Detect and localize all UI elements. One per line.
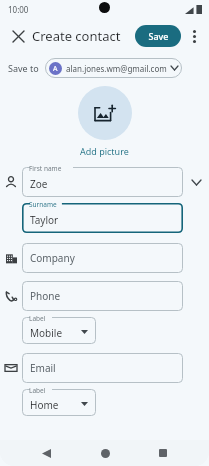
button[interactable]: A [45, 58, 182, 78]
staticText: Save to [8, 62, 39, 74]
button[interactable]: Label [22, 389, 96, 416]
button[interactable]: Close [6, 24, 30, 48]
staticText: Mobile [30, 326, 63, 340]
staticText: 10:00 [8, 4, 29, 15]
button[interactable]: More options [184, 26, 204, 46]
button[interactable]: Recent apps [150, 440, 176, 466]
staticText: Surname [29, 200, 57, 209]
staticText: Company [30, 251, 75, 265]
button[interactable]: Phone [22, 281, 183, 311]
button[interactable]: Back [33, 440, 59, 466]
staticText: A [53, 64, 58, 74]
staticText: Email [30, 361, 56, 375]
button[interactable]: Label [22, 317, 96, 344]
staticText: Label [29, 314, 46, 323]
button[interactable]: Save [135, 25, 181, 47]
button[interactable]: First name [22, 167, 183, 197]
staticText: Create contact [32, 27, 121, 45]
staticText: Label [29, 386, 46, 395]
staticText: First name [29, 164, 62, 173]
staticText: Zoe [30, 177, 48, 191]
staticText: Home [30, 398, 59, 412]
staticText: Phone [30, 289, 61, 303]
staticText: alan.jones.wm@gmail.com [66, 63, 167, 74]
staticText: Taylor [30, 213, 59, 227]
button[interactable]: Email [22, 353, 183, 383]
button[interactable]: Add picture [80, 145, 129, 157]
button[interactable]: Surname [22, 203, 183, 233]
button[interactable]: Add picture [78, 86, 132, 140]
button[interactable]: Home [92, 440, 118, 466]
staticText: Save [148, 30, 169, 42]
button[interactable]: Company [22, 243, 183, 273]
button[interactable]: Expand name fields [183, 167, 209, 197]
